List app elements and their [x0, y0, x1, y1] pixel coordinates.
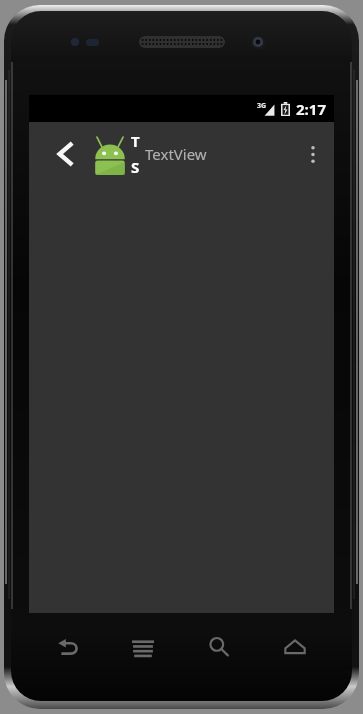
button[interactable]: Home — [257, 626, 333, 668]
button[interactable]: More options — [292, 128, 334, 180]
staticText: S — [131, 157, 140, 177]
staticText: TextView — [145, 144, 207, 164]
staticText: T — [131, 131, 140, 151]
button[interactable]: Back — [30, 626, 105, 668]
other: Navigate up — [57, 141, 73, 167]
button[interactable]: Menu — [105, 626, 181, 668]
staticText: 3G — [257, 101, 267, 111]
button[interactable]: Navigate up — [29, 122, 215, 186]
button[interactable]: Search — [181, 626, 257, 668]
staticText: 2:17 — [296, 99, 326, 119]
